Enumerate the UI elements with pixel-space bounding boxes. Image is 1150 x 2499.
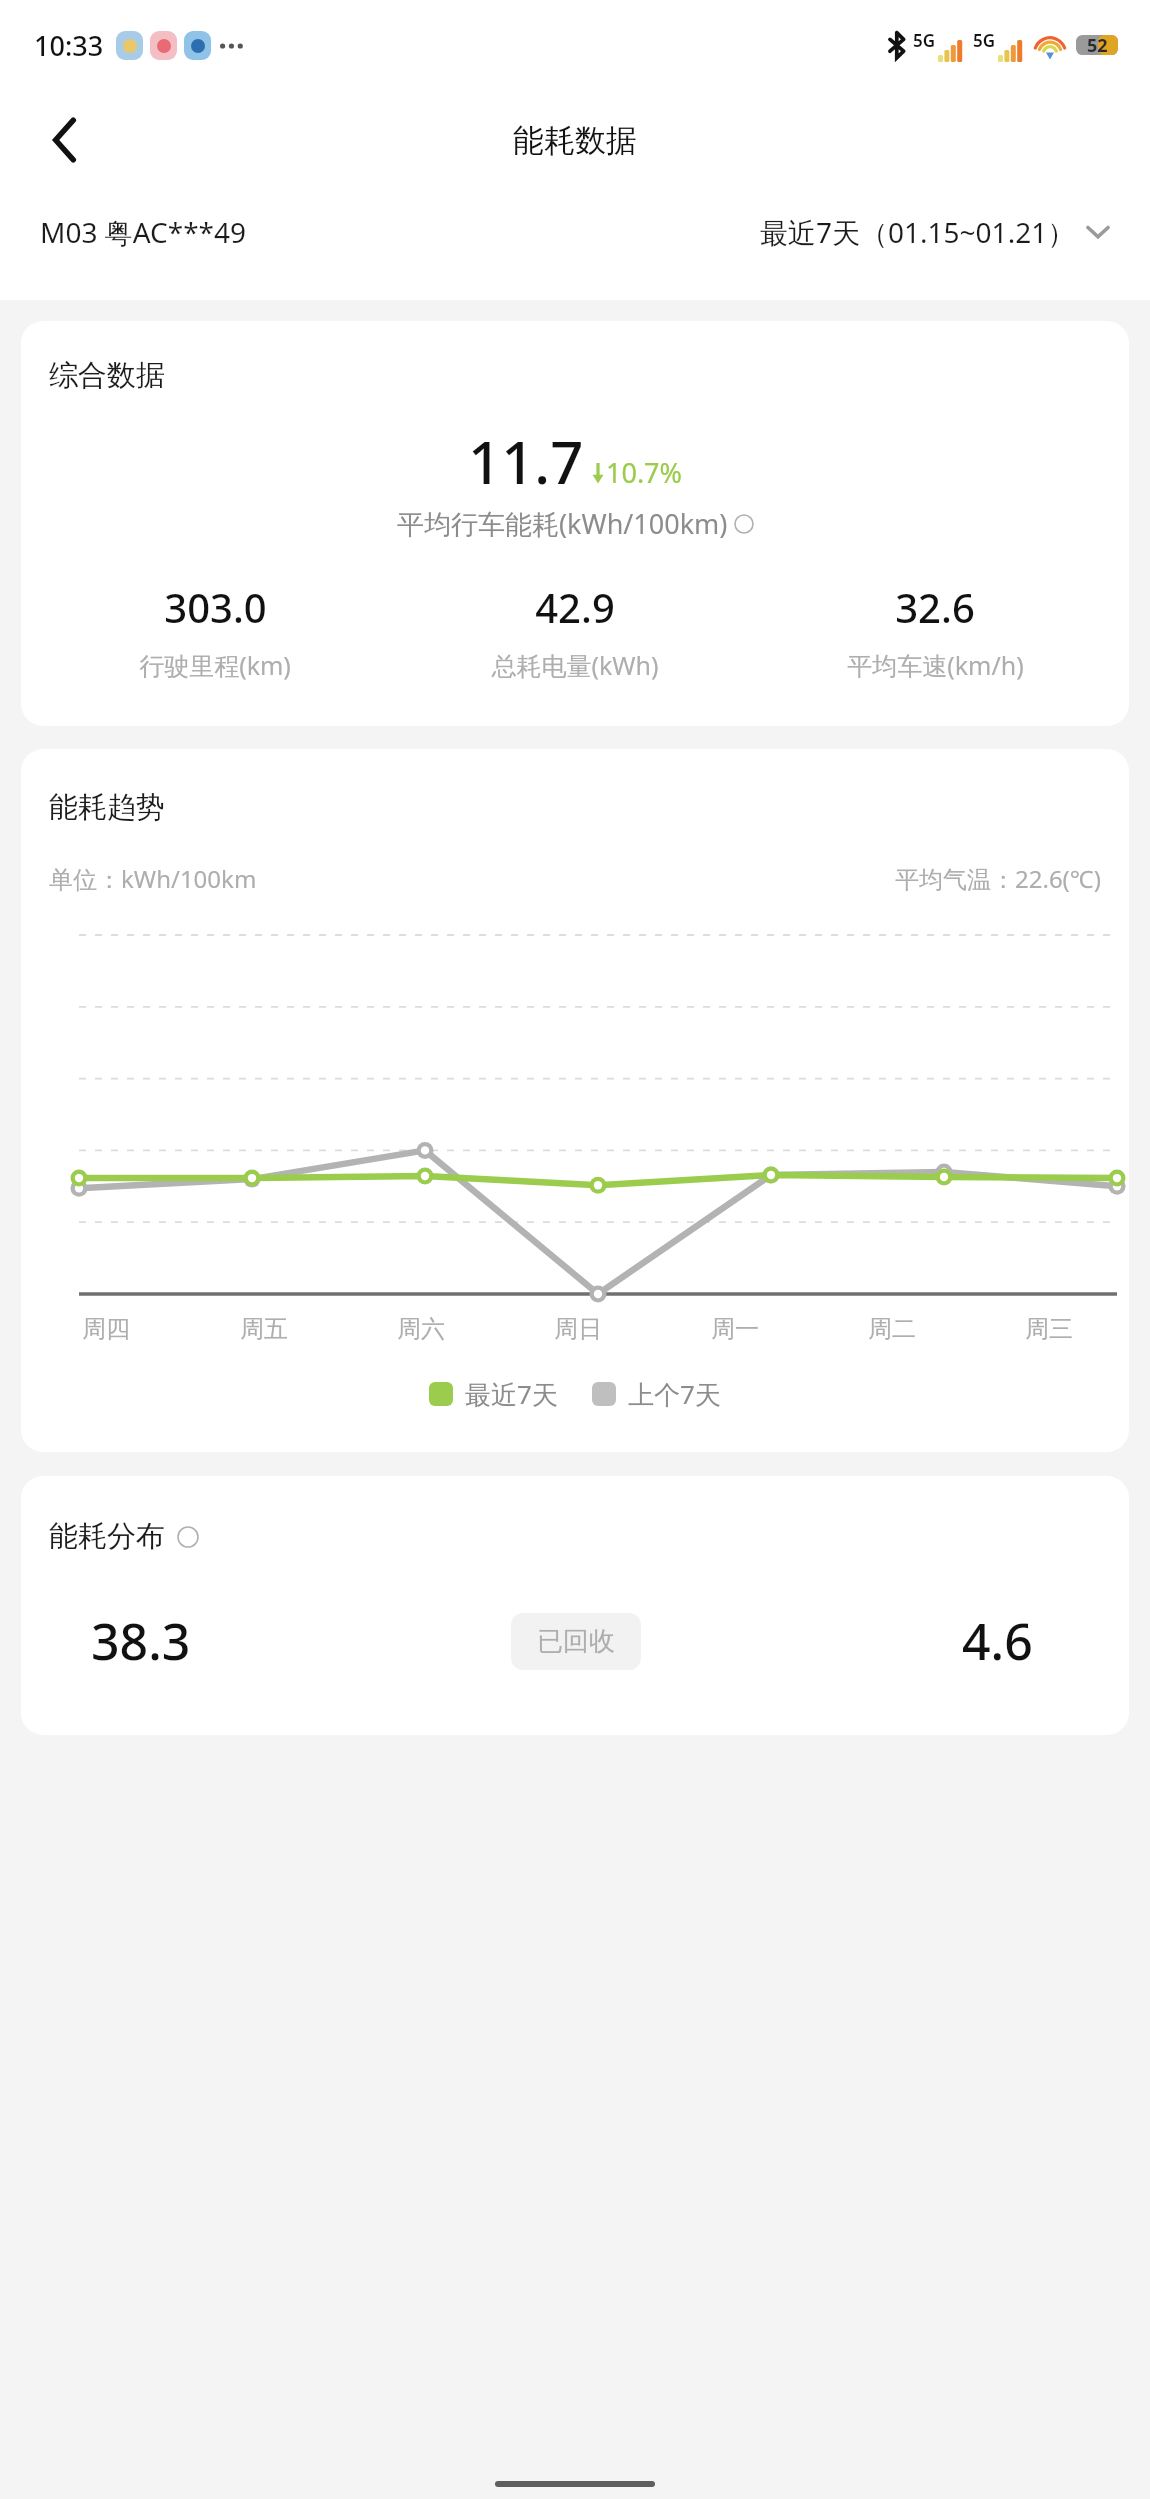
staticText: 周日	[554, 1314, 602, 1344]
staticText: 周一	[711, 1314, 759, 1344]
staticText: 已回收	[537, 1625, 615, 1658]
staticText: 5G	[973, 29, 996, 52]
staticText: 周六	[397, 1314, 445, 1344]
staticText: 上个7天	[628, 1376, 721, 1412]
staticText: 10:33	[34, 27, 104, 64]
staticText: 52	[1087, 33, 1108, 58]
staticText: 32.6	[895, 580, 975, 634]
staticText: 周五	[240, 1314, 288, 1344]
staticText: 平均气温：22.6(℃)	[895, 862, 1101, 895]
staticText: 能耗分布	[49, 1518, 165, 1555]
staticText: 周四	[82, 1314, 130, 1344]
staticText: M03 粤AC***49	[40, 213, 247, 251]
button[interactable]: 最近7天（01.15~01.21）	[760, 213, 1110, 251]
staticText: 周三	[1025, 1314, 1073, 1344]
staticText: 能耗趋势	[49, 789, 165, 826]
staticText: 303.0	[164, 580, 267, 634]
button[interactable]: Back	[30, 105, 100, 175]
staticText: 最近7天（01.15~01.21）	[760, 213, 1076, 251]
staticText: 能耗数据	[513, 121, 637, 160]
staticText: 11.7	[468, 422, 584, 501]
staticText: 综合数据	[49, 357, 165, 394]
staticText: 38.3	[91, 1607, 191, 1675]
staticText: 平均车速(km/h)	[847, 648, 1024, 682]
staticText: 42.9	[535, 580, 615, 634]
staticText: 总耗电量(kWh)	[491, 648, 659, 682]
staticText: 单位：kWh/100km	[49, 862, 257, 895]
staticText: 10.7%	[606, 454, 683, 491]
staticText: 平均行车能耗(kWh/100km)	[397, 505, 728, 542]
staticText: 行驶里程(km)	[139, 648, 291, 682]
staticText: 周二	[868, 1314, 916, 1344]
staticText: 最近7天	[465, 1376, 558, 1412]
staticText: 5G	[913, 29, 936, 52]
staticText: 4.6	[962, 1607, 1033, 1675]
